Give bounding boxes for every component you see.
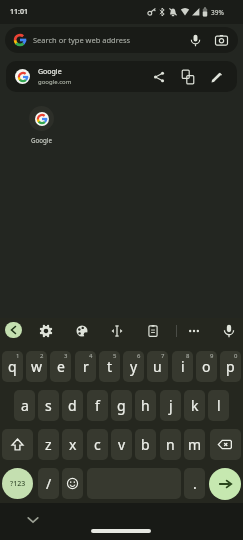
button[interactable]	[210, 429, 241, 460]
staticText: 9	[210, 352, 214, 360]
button[interactable]: n	[160, 429, 181, 460]
staticText: r	[83, 357, 89, 376]
staticText: q	[8, 357, 17, 376]
button[interactable]: h	[135, 390, 156, 421]
button[interactable]	[38, 323, 54, 339]
button[interactable]: f	[87, 390, 108, 421]
button[interactable]: a	[14, 390, 35, 421]
staticText: Search or type web address	[33, 35, 131, 45]
button[interactable]	[24, 513, 42, 527]
staticText: 3	[64, 352, 68, 360]
staticText: u	[153, 357, 162, 376]
staticText: 4	[89, 352, 93, 360]
button[interactable]	[151, 69, 167, 85]
staticText: l	[217, 396, 221, 415]
button[interactable]: i	[172, 351, 193, 382]
staticText: n	[166, 435, 175, 454]
button[interactable]	[145, 323, 161, 339]
button[interactable]	[62, 468, 83, 499]
button[interactable]: b	[135, 429, 156, 460]
button[interactable]: Google	[23, 106, 60, 144]
staticText: w	[31, 357, 43, 376]
button[interactable]: d	[62, 390, 83, 421]
staticText: b	[141, 435, 150, 454]
button[interactable]: c	[87, 429, 108, 460]
staticText: /	[46, 474, 52, 493]
staticText: 6	[137, 352, 141, 360]
staticText: ?123	[10, 479, 26, 489]
button[interactable]	[74, 323, 90, 339]
button[interactable]	[109, 323, 125, 339]
button[interactable]: u	[147, 351, 168, 382]
staticText: i	[181, 357, 185, 376]
staticText: y	[130, 357, 138, 376]
button[interactable]: l	[208, 390, 229, 421]
button[interactable]	[221, 323, 237, 339]
button[interactable]: ?123	[2, 468, 33, 499]
button[interactable]: w	[26, 351, 47, 382]
button[interactable]	[209, 468, 241, 500]
button[interactable]: /	[38, 468, 59, 499]
staticText: Google	[31, 136, 52, 144]
staticText: k	[191, 396, 199, 415]
staticText: v	[118, 435, 126, 454]
staticText: 0	[234, 352, 238, 360]
button[interactable]: p	[220, 351, 241, 382]
button[interactable]	[186, 323, 202, 339]
button[interactable]: v	[111, 429, 132, 460]
staticText: 11:01	[10, 7, 28, 17]
staticText: c	[94, 435, 101, 454]
button[interactable]: z	[38, 429, 59, 460]
button[interactable]: Search or type web address	[5, 27, 238, 53]
button[interactable]: m	[184, 429, 205, 460]
button[interactable]: .	[184, 468, 205, 499]
button[interactable]: y	[123, 351, 144, 382]
staticText: x	[69, 435, 77, 454]
staticText: j	[169, 396, 173, 415]
button[interactable]: r	[75, 351, 96, 382]
button[interactable]: s	[38, 390, 59, 421]
staticText: g	[117, 396, 126, 415]
staticText: h	[141, 396, 150, 415]
button[interactable]: o	[196, 351, 217, 382]
staticText: t	[107, 357, 113, 376]
staticText: 8	[186, 352, 190, 360]
button[interactable]: q	[2, 351, 23, 382]
button[interactable]: Google	[6, 61, 237, 92]
staticText: 5	[113, 352, 117, 360]
staticText: 1	[16, 352, 20, 360]
button[interactable]	[2, 429, 33, 460]
staticText: e	[57, 357, 65, 376]
staticText: google.com	[38, 78, 72, 86]
button[interactable]: e	[50, 351, 71, 382]
button[interactable]	[209, 69, 225, 85]
button[interactable]: t	[99, 351, 120, 382]
button[interactable]: j	[160, 390, 181, 421]
staticText: .	[193, 474, 197, 493]
staticText: Google	[38, 67, 62, 77]
staticText: o	[202, 357, 211, 376]
button[interactable]: x	[62, 429, 83, 460]
button[interactable]	[5, 322, 22, 338]
button[interactable]: k	[184, 390, 205, 421]
staticText: f	[95, 396, 100, 415]
staticText: a	[21, 396, 29, 415]
staticText: 7	[161, 352, 165, 360]
staticText: d	[68, 396, 77, 415]
staticText: m	[188, 435, 202, 454]
staticText: z	[45, 435, 52, 454]
staticText: 39%	[211, 8, 224, 17]
staticText: p	[226, 357, 235, 376]
staticText: 2	[40, 352, 44, 360]
button[interactable]: g	[111, 390, 132, 421]
button[interactable]	[180, 69, 196, 85]
staticText: s	[45, 396, 52, 415]
